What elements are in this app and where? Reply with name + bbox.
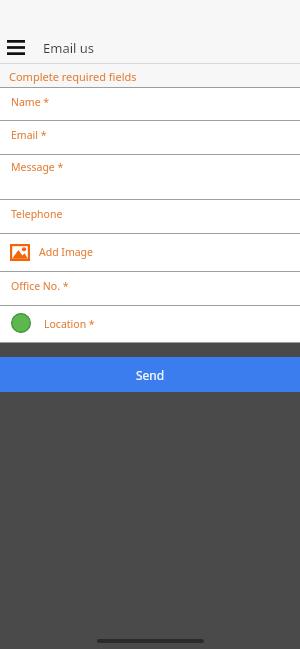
button[interactable]: Name * [0,88,300,121]
staticText: Location * [44,317,95,331]
staticText: Name * [11,95,50,109]
staticText: Office No. * [11,279,69,293]
staticText: Message * [11,160,64,174]
button[interactable]: Add Image [0,234,300,272]
staticText: Email us [43,39,95,57]
staticText: Telephone [11,207,63,221]
staticText: Send [136,367,165,383]
button[interactable]: Location * [0,306,300,343]
button[interactable]: Menu [0,32,32,63]
button[interactable]: Send [0,357,300,392]
button[interactable]: Telephone [0,200,300,234]
button[interactable]: Complete required fields [0,64,300,87]
button[interactable]: Office No. * [0,272,300,306]
button[interactable]: Message * [0,155,300,200]
staticText: Email * [11,128,47,142]
staticText: Add Image [39,245,94,259]
staticText: Complete required fields [9,69,137,84]
button[interactable]: Email * [0,121,300,155]
